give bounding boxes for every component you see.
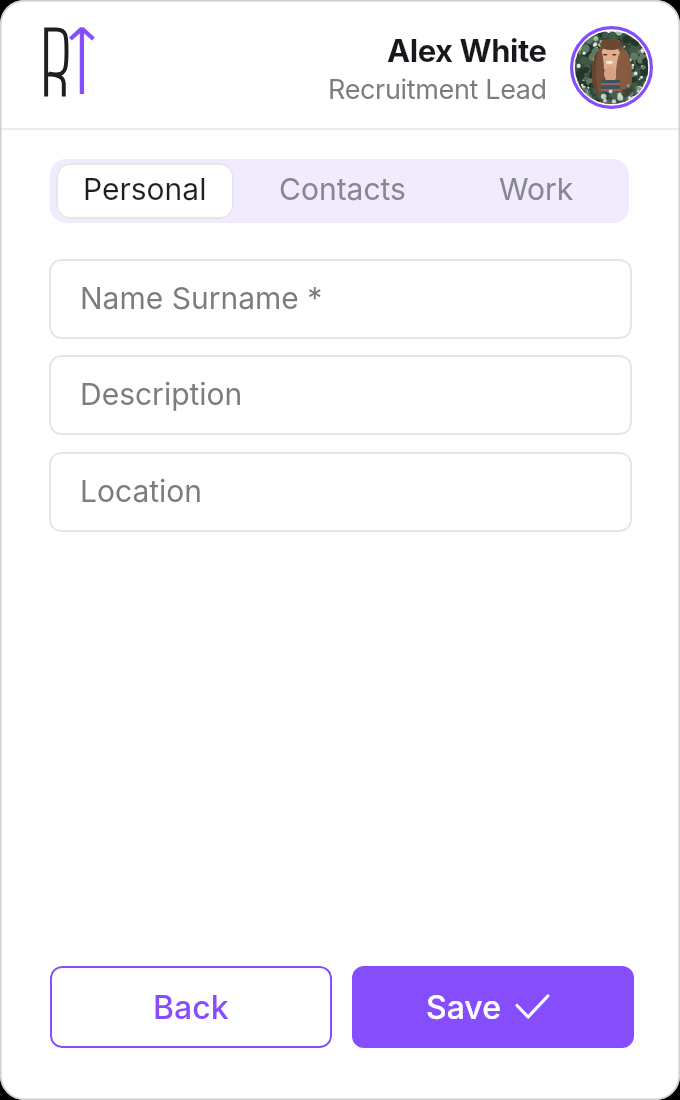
staticText: Alex White xyxy=(387,32,547,70)
staticText: Work xyxy=(499,171,574,207)
staticText: Description xyxy=(80,376,243,412)
button[interactable]: Name Surname * xyxy=(49,259,632,339)
button[interactable]: Back xyxy=(50,966,332,1048)
staticText: Location xyxy=(80,473,203,509)
button[interactable]: Description xyxy=(49,355,632,435)
button[interactable]: Profile photo xyxy=(570,26,653,109)
button[interactable]: Personal xyxy=(56,163,234,219)
staticText: Save xyxy=(426,988,501,1027)
button[interactable]: Home xyxy=(38,22,94,98)
button[interactable]: Location xyxy=(49,452,632,532)
staticText: Personal xyxy=(83,171,207,207)
button[interactable]: Save xyxy=(352,966,634,1048)
staticText: Contacts xyxy=(279,171,406,207)
button[interactable]: Contacts xyxy=(245,159,440,223)
staticText: Back xyxy=(153,988,229,1027)
staticText: Name Surname * xyxy=(80,280,323,316)
staticText: Recruitment Lead xyxy=(328,73,547,106)
button[interactable]: Work xyxy=(440,159,629,223)
